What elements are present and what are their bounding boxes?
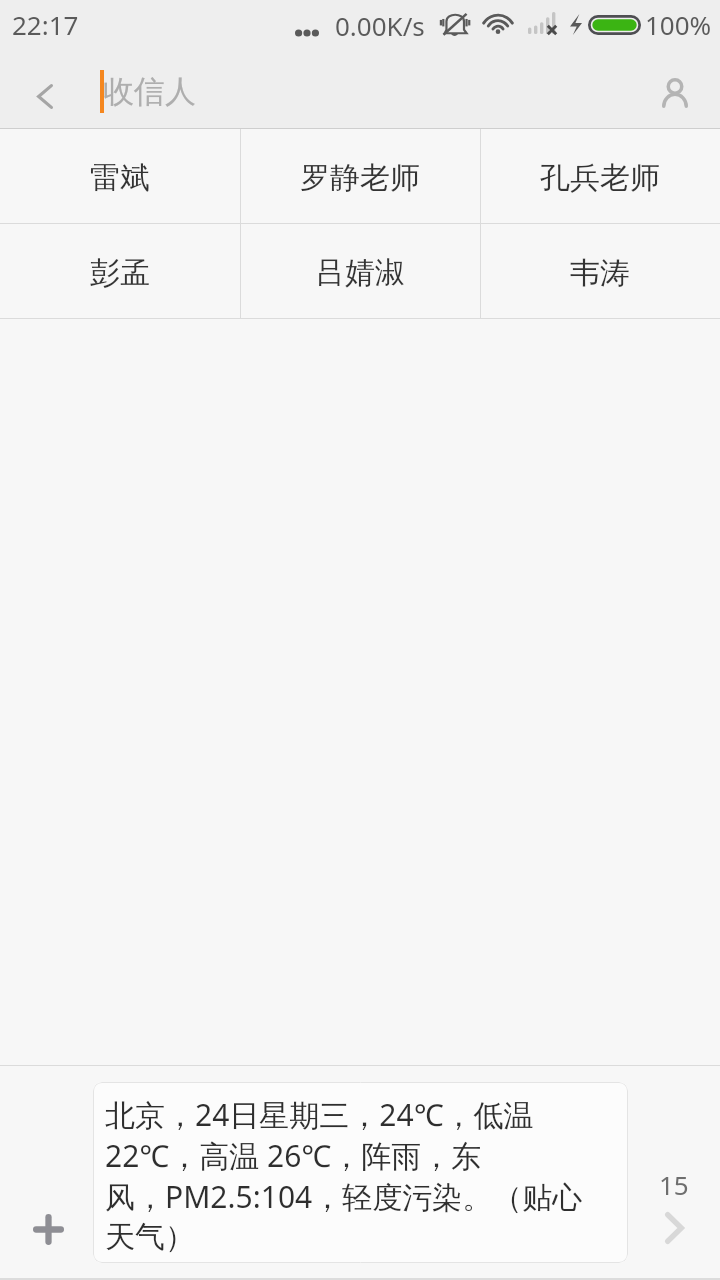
staticText: 北京，24日星期三，24℃，低温 22℃，高温 26℃，阵雨，东 风，PM2.5…: [105, 1094, 583, 1256]
button[interactable]: Back: [0, 53, 86, 128]
button[interactable]: 韦涛: [480, 224, 720, 318]
button[interactable]: Add attachment: [6, 1189, 90, 1269]
staticText: 吕婧淑: [315, 254, 405, 292]
staticText: 22:17: [12, 7, 79, 42]
staticText: 雷斌: [90, 159, 150, 197]
staticText: 15: [659, 1167, 689, 1202]
staticText: 韦涛: [570, 254, 630, 292]
staticText: 0.00K/s: [335, 8, 425, 43]
staticText: 彭孟: [90, 254, 150, 292]
button[interactable]: 吕婧淑: [240, 224, 480, 318]
staticText: 100%: [645, 7, 712, 42]
button[interactable]: 雷斌: [0, 129, 240, 223]
staticText: 罗静老师: [300, 159, 420, 197]
button[interactable]: Choose contact: [634, 53, 720, 128]
button[interactable]: 彭孟: [0, 224, 240, 318]
button[interactable]: Send: [644, 1198, 704, 1258]
staticText: 孔兵老师: [540, 159, 660, 197]
button[interactable]: 罗静老师: [240, 129, 480, 223]
staticText: 收信人: [103, 72, 196, 111]
button[interactable]: 孔兵老师: [480, 129, 720, 223]
button[interactable]: 北京，24日星期三，24℃，低温 22℃，高温 26℃，阵雨，东 风，PM2.5…: [93, 1082, 628, 1263]
